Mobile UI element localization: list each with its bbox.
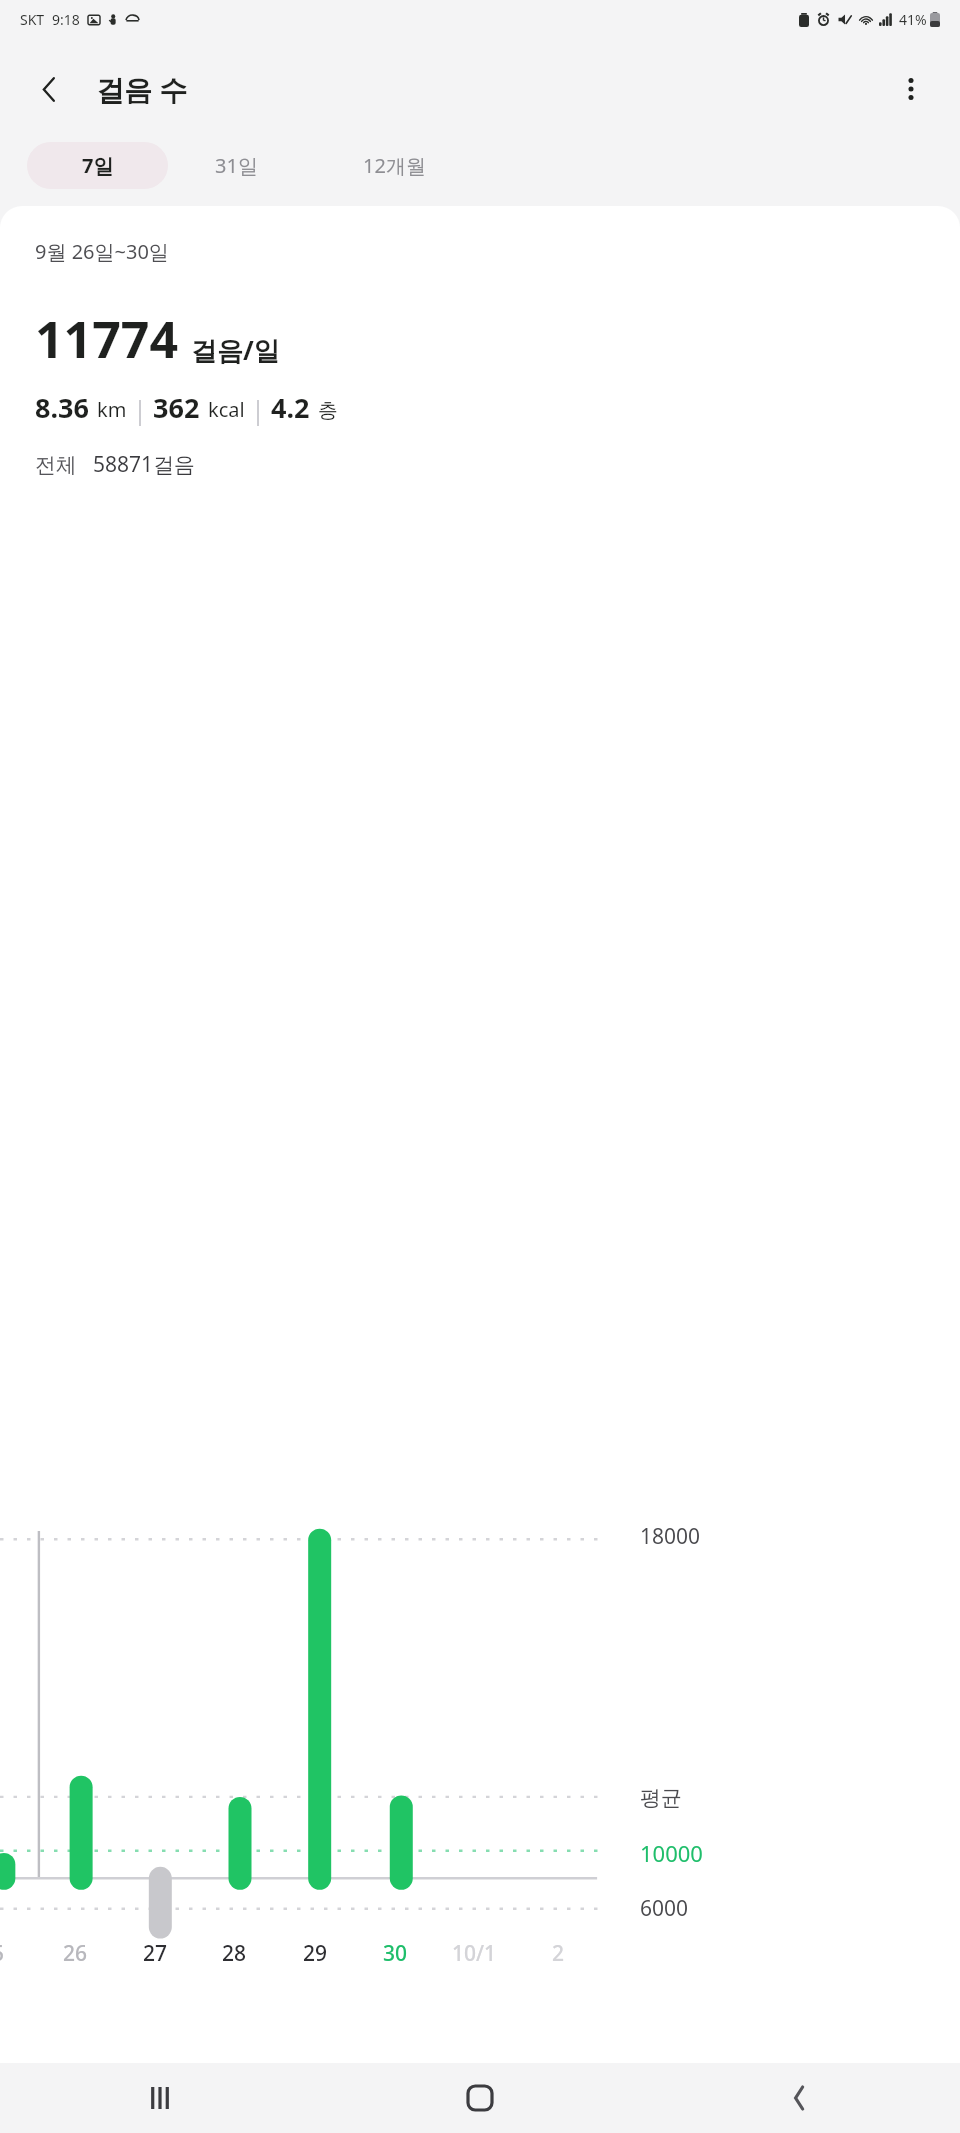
button[interactable]: Home <box>320 2063 640 2133</box>
staticText: 10000 <box>640 1838 703 1868</box>
staticText: 11774 <box>35 305 178 373</box>
staticText: 58871걸음 <box>93 450 196 479</box>
staticText: 걸음 수 <box>96 70 188 108</box>
staticText: 층 <box>318 398 338 423</box>
button[interactable]: 7일 <box>27 142 168 189</box>
staticText: km <box>97 396 127 423</box>
button[interactable]: Back <box>640 2063 960 2133</box>
staticText: 41% <box>899 10 927 29</box>
staticText: 26 <box>63 1939 88 1968</box>
staticText: 10/1 <box>452 1939 497 1968</box>
staticText: 7일 <box>82 152 114 179</box>
staticText: 8.36 <box>35 389 89 426</box>
button[interactable]: More options <box>884 62 938 116</box>
staticText: 2 <box>552 1939 565 1968</box>
staticText: 27 <box>143 1939 168 1968</box>
staticText: 평균 <box>640 1785 682 1811</box>
staticText: 31일 <box>215 152 258 179</box>
staticText: SKT <box>20 10 45 29</box>
staticText: 6000 <box>640 1894 689 1923</box>
staticText: 362 <box>153 389 200 426</box>
staticText: 걸음/일 <box>191 332 280 368</box>
staticText: 29 <box>303 1939 328 1968</box>
staticText: 18000 <box>640 1522 701 1551</box>
staticText: 9:18 <box>52 10 80 29</box>
button[interactable]: Recents <box>0 2063 320 2133</box>
staticText: 12개월 <box>363 152 426 179</box>
button[interactable]: Back <box>22 62 76 116</box>
button[interactable]: 12개월 <box>304 142 484 189</box>
button[interactable]: 31일 <box>168 142 304 189</box>
staticText: 9월 26일~30일 <box>35 238 169 265</box>
staticText: 4.2 <box>271 389 310 426</box>
staticText: 30 <box>383 1939 408 1968</box>
staticText: 전체 <box>35 452 77 478</box>
staticText: 28 <box>222 1939 247 1968</box>
staticText: kcal <box>208 396 245 423</box>
staticText: 5 <box>0 1939 5 1968</box>
